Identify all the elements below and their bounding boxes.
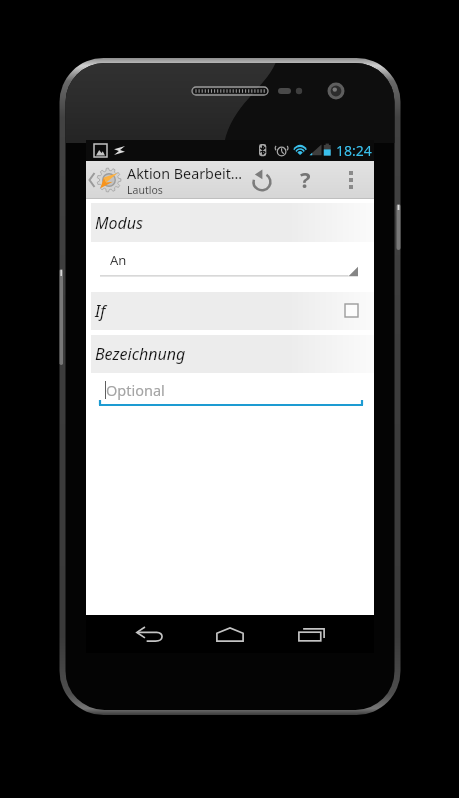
- staticText: If: [95, 300, 106, 322]
- staticText: Modus: [95, 212, 143, 234]
- button[interactable]: Startbildschirm: [190, 615, 270, 653]
- staticText: ?: [300, 164, 311, 194]
- button[interactable]: An: [86, 244, 374, 278]
- staticText: 18:24: [336, 141, 372, 160]
- button[interactable]: Zurücksetzen: [240, 161, 283, 199]
- button[interactable]: Mehr Optionen: [328, 161, 374, 199]
- button[interactable]: Aktion Bearbeit…: [86, 161, 330, 199]
- staticText: Bezeichnung: [95, 343, 186, 365]
- button[interactable]: Zurück: [110, 615, 190, 653]
- button[interactable]: Hilfe: [283, 161, 328, 199]
- button[interactable]: If aktivieren: [345, 304, 358, 317]
- staticText: An: [110, 251, 127, 269]
- staticText: Aktion Bearbeit…: [127, 164, 243, 183]
- staticText: Lautlos: [127, 183, 163, 197]
- staticText: Optional: [106, 380, 165, 400]
- button[interactable]: Optional: [86, 375, 374, 407]
- button[interactable]: Übersicht: [271, 615, 351, 653]
